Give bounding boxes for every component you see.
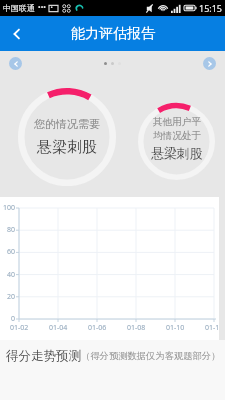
staticText: 20 bbox=[7, 292, 16, 302]
staticText: （得分预测数据仅为客观题部分） bbox=[81, 350, 221, 362]
staticText: 100 bbox=[3, 203, 16, 213]
staticText: 01-10 bbox=[166, 323, 185, 333]
staticText: 01-04 bbox=[49, 323, 68, 333]
button[interactable]: Next bbox=[203, 57, 216, 70]
staticText: 中国联通 bbox=[3, 3, 35, 13]
staticText: 您的情况需要 bbox=[34, 117, 100, 131]
staticText: ••• bbox=[38, 3, 46, 13]
staticText: 40 bbox=[7, 270, 16, 280]
staticText: 01-08 bbox=[127, 323, 146, 333]
staticText: 01-02 bbox=[10, 323, 29, 333]
staticText: 其他用户平 bbox=[153, 116, 201, 128]
button[interactable]: Back bbox=[0, 16, 34, 51]
staticText: 0 bbox=[11, 314, 16, 324]
staticText: 01-12 bbox=[205, 323, 219, 333]
staticText: 能力评估报告 bbox=[71, 25, 155, 43]
staticText: 80 bbox=[7, 225, 16, 235]
staticText: 得分走势预测 bbox=[6, 348, 81, 364]
button[interactable]: Previous bbox=[9, 57, 22, 70]
staticText: 悬梁刺股 bbox=[151, 146, 203, 162]
staticText: 15:15 bbox=[199, 2, 223, 14]
staticText: 悬梁刺股 bbox=[37, 138, 97, 157]
staticText: 60 bbox=[7, 247, 16, 257]
staticText: 均情况处于 bbox=[153, 130, 201, 142]
staticText: 01-06 bbox=[88, 323, 107, 333]
